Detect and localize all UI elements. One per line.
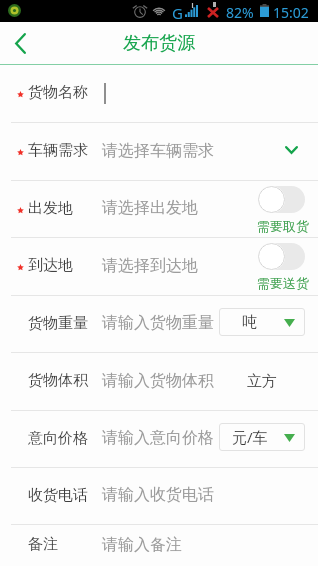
staticText: 82% bbox=[226, 3, 254, 22]
staticText: 货物体积 bbox=[28, 371, 88, 390]
staticText: G bbox=[172, 3, 183, 23]
button[interactable]: 意向价格 bbox=[0, 411, 318, 467]
staticText: 出发地 bbox=[28, 199, 73, 218]
staticText: 请选择车辆需求 bbox=[102, 141, 214, 161]
staticText: 元/车 bbox=[232, 427, 268, 447]
button[interactable]: 到达地 bbox=[0, 238, 318, 295]
button[interactable]: 需要送货 bbox=[258, 243, 305, 270]
staticText: 意向价格 bbox=[28, 429, 88, 448]
staticText: 15:02 bbox=[273, 3, 309, 22]
button[interactable]: 需要取货 bbox=[258, 186, 305, 213]
staticText: 立方 bbox=[247, 372, 277, 391]
staticText: 货物重量 bbox=[28, 314, 88, 333]
staticText: 请输入货物重量 bbox=[102, 313, 214, 333]
button[interactable]: 备注 bbox=[0, 525, 318, 566]
staticText: 需要送货 bbox=[257, 275, 310, 291]
staticText: 请输入货物体积 bbox=[102, 371, 214, 391]
button[interactable]: Back bbox=[0, 22, 46, 64]
staticText: 收货电话 bbox=[28, 486, 88, 505]
button[interactable]: 车辆需求 bbox=[0, 123, 318, 180]
button[interactable]: 出发地 bbox=[0, 181, 318, 237]
staticText: 发布货源 bbox=[123, 32, 195, 55]
button[interactable]: 元/车 bbox=[219, 423, 305, 451]
button[interactable]: 收货电话 bbox=[0, 468, 318, 524]
staticText: 吨 bbox=[242, 313, 257, 332]
staticText: 请输入收货电话 bbox=[102, 485, 214, 505]
staticText: 备注 bbox=[28, 535, 58, 554]
staticText: 请输入备注 bbox=[102, 535, 182, 555]
staticText: 需要取货 bbox=[257, 218, 310, 234]
staticText: 请选择出发地 bbox=[102, 198, 198, 218]
staticText: 货物名称 bbox=[28, 83, 88, 102]
staticText: 到达地 bbox=[28, 256, 73, 275]
button[interactable]: Expand bbox=[273, 123, 318, 180]
staticText: 请输入意向价格 bbox=[102, 428, 214, 448]
button[interactable]: 货物名称 bbox=[0, 65, 318, 122]
staticText: 请选择到达地 bbox=[102, 256, 198, 276]
button[interactable]: 吨 bbox=[219, 308, 305, 336]
button[interactable]: 货物重量 bbox=[0, 296, 318, 352]
staticText: 车辆需求 bbox=[28, 141, 88, 160]
button[interactable]: 货物体积 bbox=[0, 353, 318, 410]
